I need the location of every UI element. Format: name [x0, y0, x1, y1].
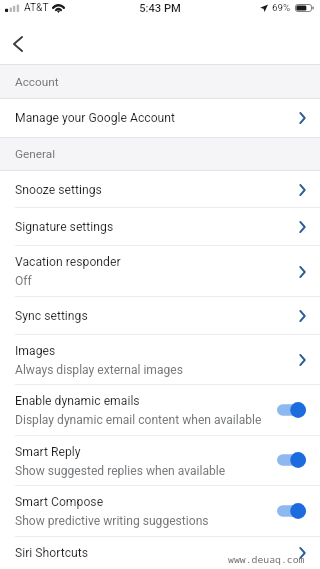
- staticText: Smart Reply: [15, 445, 81, 459]
- button[interactable]: Back: [4, 30, 32, 58]
- staticText: Account: [15, 75, 59, 89]
- button[interactable]: Smart Reply: [0, 436, 320, 486]
- button[interactable]: Snooze settings: [0, 171, 320, 208]
- staticText: 5:43 PM: [139, 2, 181, 15]
- button[interactable]: Vacation responder: [0, 246, 320, 297]
- staticText: 69%: [272, 2, 291, 13]
- button[interactable]: Smart Compose: [0, 486, 320, 537]
- staticText: Display dynamic email content when avail…: [15, 413, 262, 427]
- staticText: Show predictive writing suggestions: [15, 514, 209, 528]
- button[interactable]: Enable dynamic emails: [0, 385, 320, 436]
- button[interactable]: Siri Shortcuts: [0, 537, 320, 569]
- staticText: Show suggested replies when available: [15, 464, 226, 478]
- staticText: Siri Shortcuts: [15, 546, 89, 560]
- staticText: General: [15, 147, 56, 161]
- staticText: Snooze settings: [15, 183, 102, 197]
- button[interactable]: Signature settings: [0, 208, 320, 246]
- staticText: Signature settings: [15, 220, 114, 234]
- button[interactable]: Images: [0, 335, 320, 385]
- staticText: www.deuaq.com: [228, 553, 305, 566]
- staticText: Smart Compose: [15, 495, 104, 509]
- staticText: Always display external images: [15, 363, 183, 377]
- staticText: Sync settings: [15, 309, 88, 323]
- staticText: Vacation responder: [15, 255, 121, 269]
- staticText: Manage your Google Account: [15, 111, 176, 125]
- button[interactable]: Sync settings: [0, 297, 320, 335]
- staticText: Off: [15, 274, 32, 288]
- staticText: Images: [15, 344, 56, 358]
- staticText: AT&T: [24, 2, 49, 14]
- button[interactable]: Manage your Google Account: [0, 99, 320, 137]
- staticText: Enable dynamic emails: [15, 394, 140, 408]
